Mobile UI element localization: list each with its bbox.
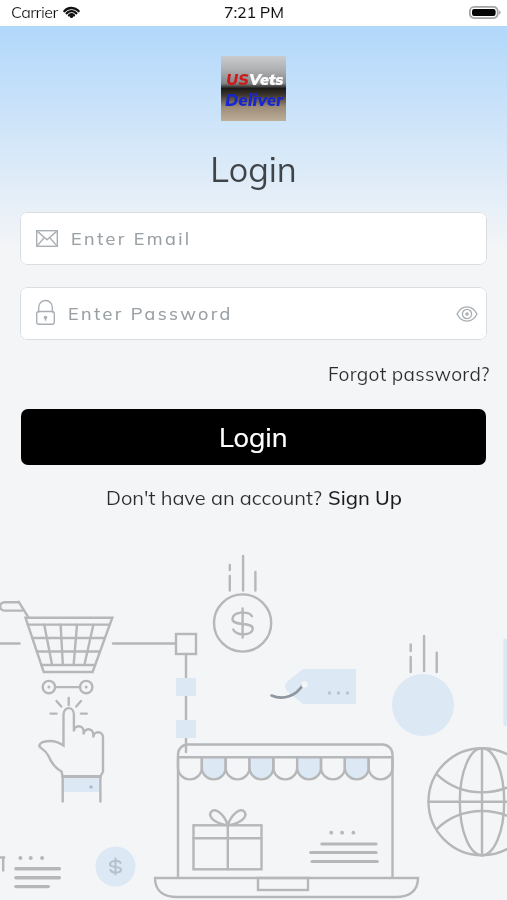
staticText: Deliver <box>225 89 290 110</box>
staticText: Carrier <box>11 2 58 22</box>
button[interactable]: Forgot password? <box>309 360 507 388</box>
button[interactable]: Enter Password <box>20 287 487 340</box>
staticText: Don't have an account? <box>106 485 328 510</box>
staticText: US <box>226 69 249 89</box>
button[interactable]: Sign Up <box>328 485 402 510</box>
staticText: Forgot password? <box>328 362 490 386</box>
staticText: Login <box>0 148 507 191</box>
staticText: Vets <box>249 69 284 89</box>
button[interactable]: Show password <box>452 299 482 329</box>
button[interactable]: Login <box>21 409 486 465</box>
staticText: Enter Email <box>71 227 192 250</box>
button[interactable]: Enter Email <box>20 212 487 265</box>
staticText: 7:21 PM <box>224 2 284 22</box>
staticText: Enter Password <box>68 302 233 325</box>
staticText: Sign Up <box>328 485 402 510</box>
staticText: Login <box>219 420 288 454</box>
